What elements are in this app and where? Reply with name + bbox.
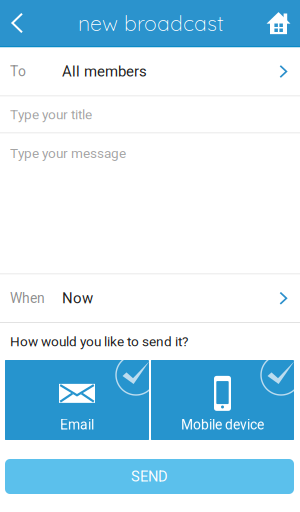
staticText: All members [62, 63, 147, 80]
staticText: Now [62, 289, 93, 307]
staticText: When [10, 290, 45, 306]
button[interactable]: Home [252, 0, 300, 46]
staticText: Email [60, 417, 94, 433]
staticText: new broadcast [78, 10, 224, 36]
button[interactable]: Type your title [0, 96, 300, 132]
staticText: SEND [131, 468, 168, 485]
staticText: To [10, 63, 26, 80]
staticText: Type your title [10, 106, 92, 122]
staticText: Type your message [10, 145, 126, 161]
button[interactable]: SEND [5, 459, 294, 494]
button[interactable]: Mobile device [151, 360, 294, 440]
button[interactable]: Back [0, 0, 37, 46]
button[interactable]: Type your message [0, 133, 300, 273]
staticText: Mobile device [181, 417, 264, 433]
staticText: How would you like to send it? [10, 333, 188, 349]
button[interactable]: When [0, 274, 300, 322]
button[interactable]: Email [5, 360, 149, 440]
button[interactable]: To [0, 47, 300, 95]
